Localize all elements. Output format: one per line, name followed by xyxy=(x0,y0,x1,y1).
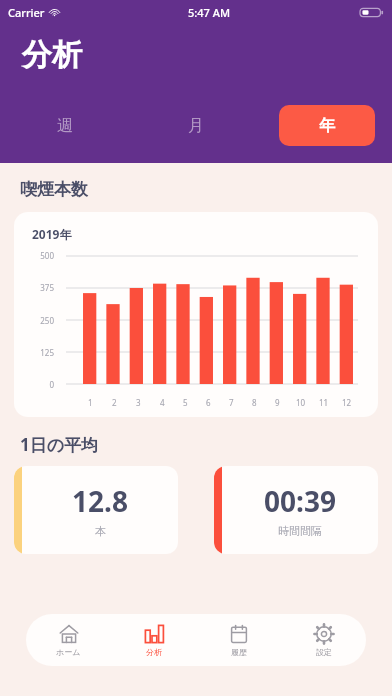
button[interactable]: 週 xyxy=(17,105,113,146)
button[interactable]: 00:39 xyxy=(214,466,378,554)
staticText: 7 xyxy=(229,397,234,408)
button[interactable]: Home xyxy=(26,614,111,666)
staticText: 4 xyxy=(160,397,165,408)
other: History xyxy=(229,624,249,644)
staticText: 250 xyxy=(40,315,54,326)
staticText: 1 xyxy=(88,397,93,408)
other: Analytics xyxy=(144,624,164,644)
staticText: 9 xyxy=(275,397,280,408)
staticText: 1日の平均 xyxy=(20,433,99,456)
staticText: 喫煙本数 xyxy=(20,179,88,200)
staticText: 2 xyxy=(112,397,117,408)
button[interactable]: 月 xyxy=(148,105,244,146)
button[interactable]: Settings xyxy=(281,614,366,666)
staticText: 月 xyxy=(188,116,204,136)
staticText: 分析 xyxy=(146,647,162,657)
staticText: 3 xyxy=(136,397,141,408)
staticText: 500 xyxy=(40,250,54,261)
staticText: 6 xyxy=(206,397,211,408)
staticText: 125 xyxy=(40,347,54,358)
staticText: 5:47 AM xyxy=(188,5,231,20)
staticText: 5 xyxy=(183,397,188,408)
staticText: Carrier xyxy=(8,5,45,20)
staticText: 375 xyxy=(40,282,54,293)
button[interactable]: Analytics xyxy=(111,614,196,666)
staticText: 本 xyxy=(95,524,106,538)
staticText: 設定 xyxy=(316,647,332,657)
staticText: 10 xyxy=(296,397,306,408)
staticText: 0 xyxy=(49,379,54,390)
staticText: 00:39 xyxy=(264,482,336,520)
staticText: 時間間隔 xyxy=(278,524,322,538)
staticText: 年 xyxy=(319,116,335,136)
staticText: 12.8 xyxy=(72,482,128,520)
button[interactable]: 12.8 xyxy=(14,466,178,554)
button[interactable]: 年 xyxy=(279,105,375,146)
staticText: 8 xyxy=(252,397,257,408)
staticText: 12 xyxy=(342,397,352,408)
staticText: 履歴 xyxy=(231,647,247,657)
other: Settings xyxy=(314,624,334,644)
staticText: ホーム xyxy=(56,647,81,657)
staticText: 2019年 xyxy=(32,226,72,242)
staticText: 11 xyxy=(319,397,329,408)
staticText: 分析 xyxy=(22,36,82,74)
button[interactable]: History xyxy=(196,614,281,666)
staticText: 週 xyxy=(57,116,73,136)
other: Home xyxy=(59,624,79,644)
